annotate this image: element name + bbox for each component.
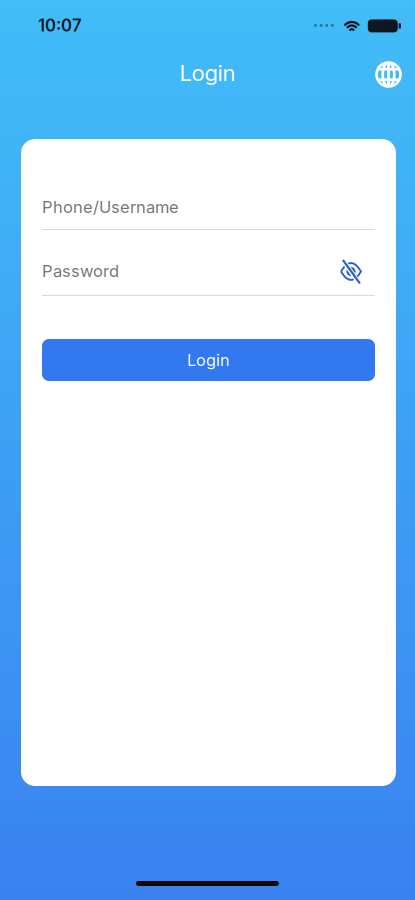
staticText: Login [187, 350, 230, 370]
staticText: Password [42, 261, 119, 281]
button[interactable]: Password [42, 261, 339, 281]
button[interactable]: Show password [339, 259, 363, 283]
staticText: 10:07 [38, 15, 82, 36]
button[interactable]: Language [375, 60, 402, 87]
staticText: Login [179, 59, 235, 86]
button[interactable]: Phone/Username [42, 197, 375, 230]
button[interactable]: Login [42, 339, 375, 381]
staticText: Phone/Username [42, 197, 179, 217]
